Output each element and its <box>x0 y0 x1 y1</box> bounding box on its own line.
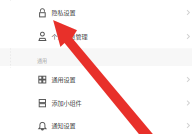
staticText: 个人信息管理 <box>51 32 87 41</box>
staticText: 通用 <box>37 56 47 64</box>
button[interactable]: 隐私设置 <box>0 1 192 24</box>
staticText: 隐私设置 <box>51 8 75 17</box>
staticText: 通知设置 <box>51 121 75 130</box>
staticText: 添加小组件 <box>51 98 81 107</box>
button[interactable]: 通知设置 <box>0 114 192 134</box>
staticText: 通用设置 <box>51 75 75 84</box>
button[interactable]: 个人信息管理 <box>0 25 192 48</box>
button[interactable]: 添加小组件 <box>0 91 192 115</box>
button[interactable]: 通用设置 <box>0 68 192 91</box>
